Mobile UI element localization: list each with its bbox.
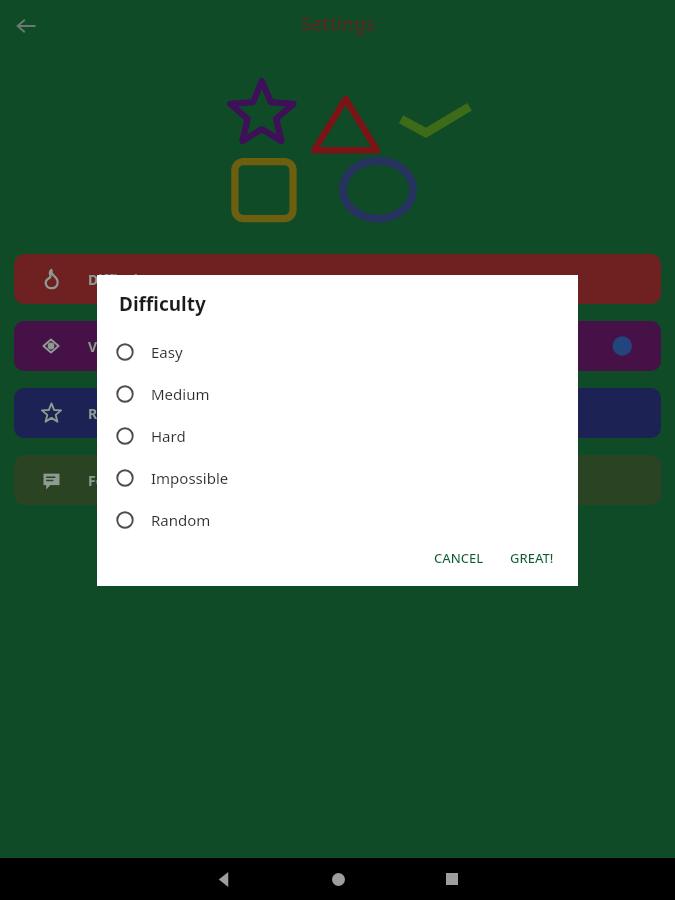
button[interactable]: Random <box>97 499 578 541</box>
staticText: Settings <box>301 11 375 37</box>
staticText: Random <box>151 510 211 530</box>
button[interactable]: Medium <box>97 373 578 415</box>
staticText: Difficulty <box>88 270 152 289</box>
button[interactable]: Recents <box>428 858 476 900</box>
staticText: Hard <box>151 426 186 446</box>
staticText: GREAT! <box>510 549 554 564</box>
button[interactable]: Easy <box>97 331 578 373</box>
button[interactable]: GREAT! <box>502 541 562 572</box>
staticText: Feedback <box>88 471 155 490</box>
button[interactable]: Back <box>200 858 248 900</box>
button[interactable]: Impossible <box>97 457 578 499</box>
staticText: Easy <box>151 342 183 362</box>
button[interactable]: Back <box>8 8 44 44</box>
button[interactable]: Hard <box>97 415 578 457</box>
button[interactable]: Vibrate <box>14 321 661 371</box>
staticText: Rate <box>88 404 121 423</box>
staticText: Impossible <box>151 468 229 488</box>
staticText: Difficulty <box>119 291 206 317</box>
button[interactable]: Feedback <box>14 455 661 505</box>
staticText: Medium <box>151 384 210 404</box>
button[interactable]: Difficulty <box>14 254 661 304</box>
staticText: Vibrate <box>88 337 139 356</box>
button[interactable]: Home <box>314 858 362 900</box>
button[interactable]: CANCEL <box>426 541 492 572</box>
staticText: CANCEL <box>434 549 484 564</box>
button[interactable]: Rate <box>14 388 661 438</box>
